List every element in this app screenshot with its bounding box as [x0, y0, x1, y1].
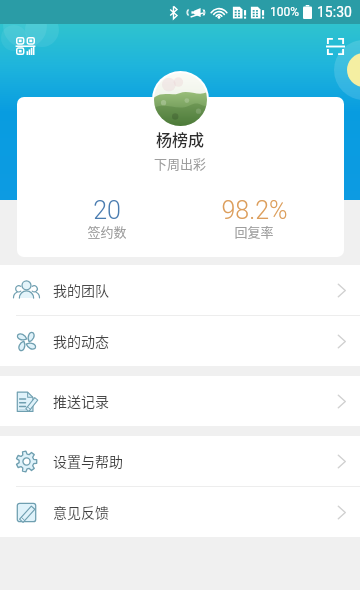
- button[interactable]: Scan: [317, 28, 353, 64]
- staticText: 20: [93, 196, 121, 225]
- staticText: 推送记录: [53, 391, 109, 411]
- staticText: 我的团队: [53, 280, 109, 300]
- button[interactable]: My QR code: [7, 28, 43, 64]
- button[interactable]: 我的动态: [0, 316, 360, 366]
- staticText: 意见反馈: [53, 502, 109, 522]
- staticText: 我的动态: [53, 331, 109, 351]
- staticText: 回复率: [234, 222, 274, 241]
- staticText: 设置与帮助: [53, 451, 123, 471]
- staticText: 100%: [270, 5, 300, 19]
- staticText: 杨榜成: [156, 127, 205, 150]
- staticText: 签约数: [87, 222, 127, 241]
- button[interactable]: 意见反馈: [0, 487, 360, 537]
- button[interactable]: 设置与帮助: [0, 436, 360, 486]
- button[interactable]: 我的团队: [0, 265, 360, 315]
- staticText: 下周出彩: [154, 154, 207, 173]
- staticText: 15:30: [317, 4, 352, 20]
- button[interactable]: 推送记录: [0, 376, 360, 426]
- staticText: 98.2%: [221, 196, 288, 225]
